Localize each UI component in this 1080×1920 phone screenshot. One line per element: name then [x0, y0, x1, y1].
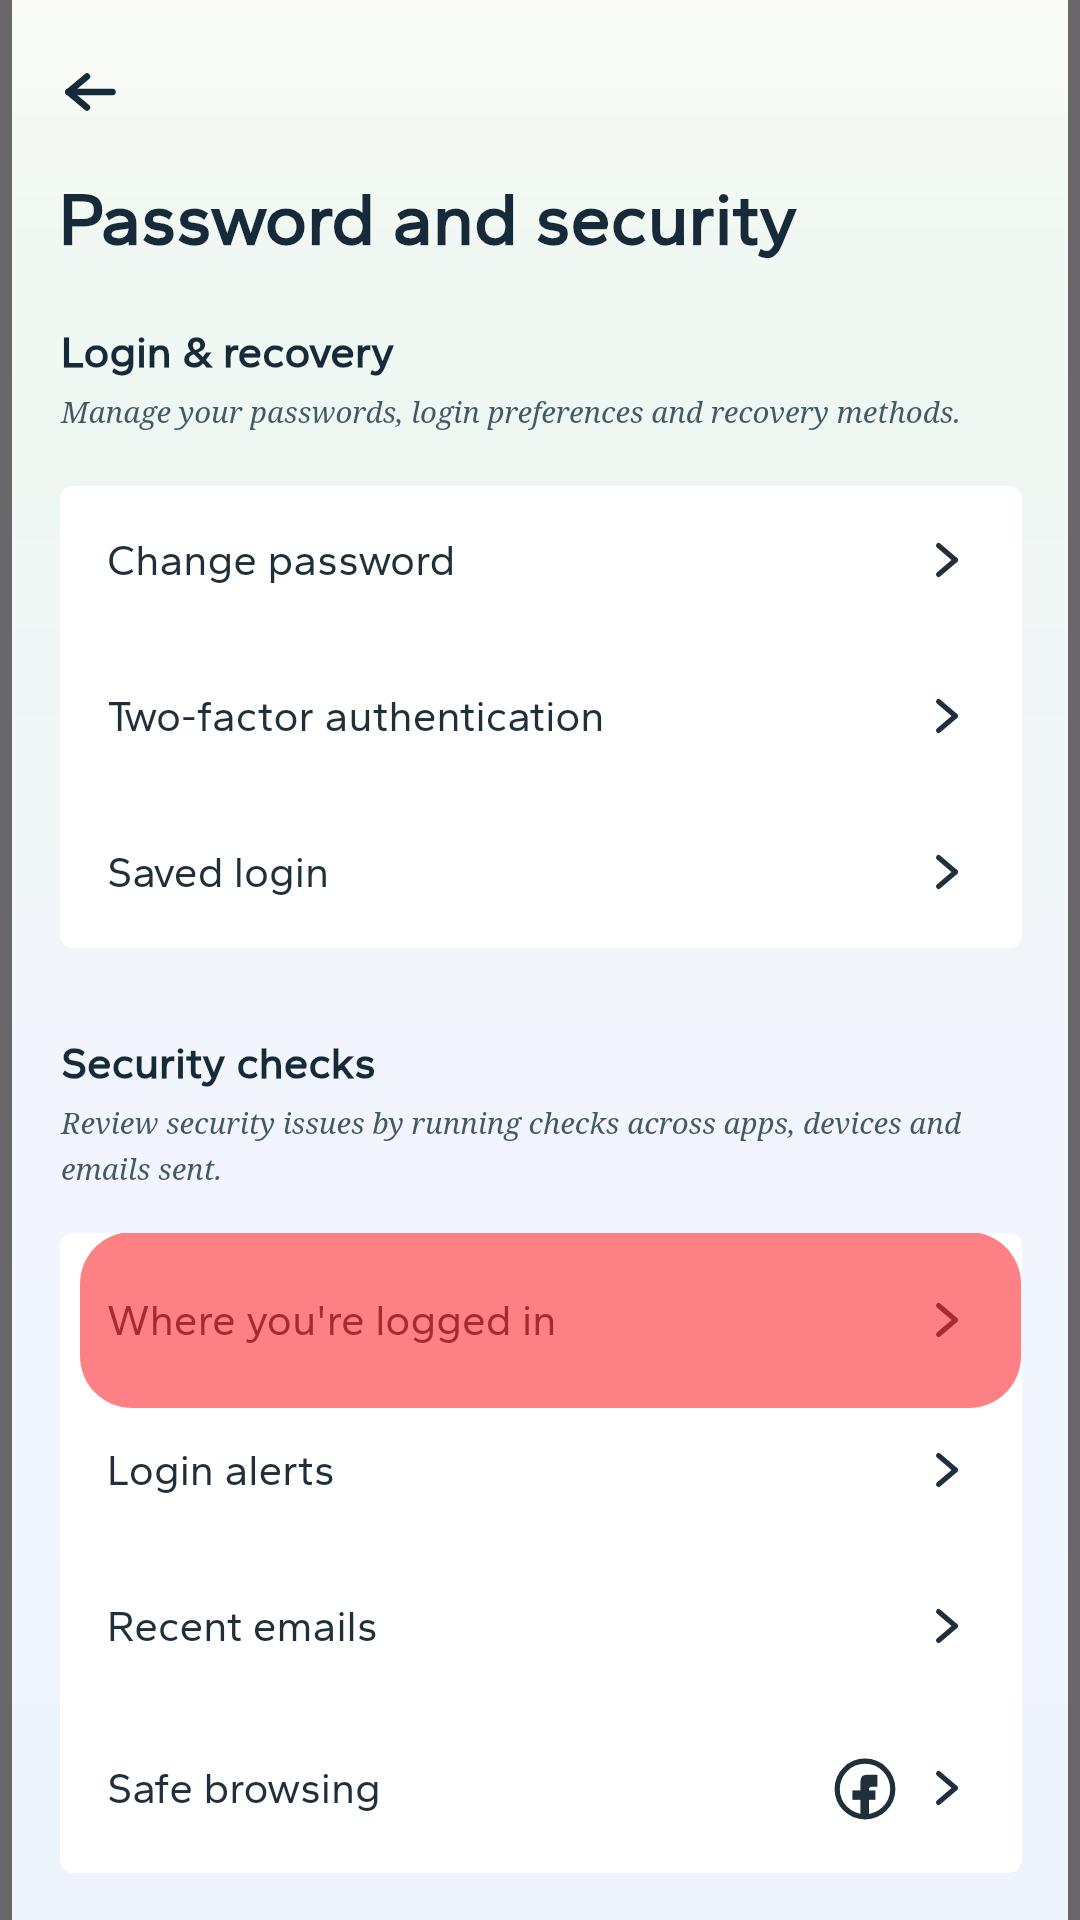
button[interactable]: Two-factor authentication [60, 648, 1022, 784]
staticText: Saved login [107, 847, 330, 898]
staticText: Recent emails [107, 1601, 378, 1652]
staticText: Login alerts [107, 1445, 335, 1496]
staticText: Where you're logged in [107, 1295, 557, 1346]
button[interactable]: Saved login [60, 804, 1022, 940]
staticText: Login & recovery [61, 325, 395, 378]
staticText: Manage your passwords, login preferences… [61, 392, 961, 432]
staticText: Safe browsing [107, 1763, 381, 1814]
button[interactable]: Back [41, 44, 137, 140]
staticText: Two-factor authentication [107, 691, 605, 742]
button[interactable]: Where you're logged in [80, 1233, 1021, 1408]
staticText: Security checks [61, 1036, 376, 1089]
staticText: Change password [107, 535, 456, 586]
staticText: Password and security [59, 176, 798, 262]
button[interactable]: Change password [60, 492, 1022, 628]
button[interactable]: Safe browsing [60, 1720, 1022, 1856]
staticText: Review security issues by running checks… [61, 1103, 986, 1189]
button[interactable]: Login alerts [60, 1402, 1022, 1538]
button[interactable]: Recent emails [60, 1558, 1022, 1694]
